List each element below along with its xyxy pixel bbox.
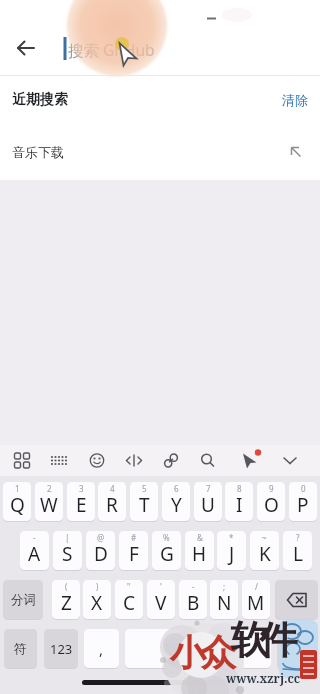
button[interactable]: 7 [194, 482, 222, 521]
staticText: I [236, 492, 243, 518]
button[interactable]: 1 [3, 482, 31, 521]
button[interactable]: 空格 [125, 629, 230, 668]
button[interactable]: 5 [130, 482, 158, 521]
staticText: | [65, 532, 70, 543]
button[interactable] [275, 580, 318, 619]
button[interactable]: 3 [67, 482, 95, 521]
button[interactable]: | [53, 531, 82, 570]
staticText: 6 [174, 483, 179, 494]
staticText: S [62, 541, 73, 567]
button[interactable] [120, 445, 160, 476]
staticText: 5 [142, 483, 147, 494]
button[interactable]: ? [283, 531, 312, 570]
staticText: L [293, 541, 303, 567]
button[interactable] [280, 445, 320, 476]
staticText: 123 [50, 640, 73, 658]
staticText: 符 [14, 641, 27, 657]
staticText: O [264, 492, 279, 518]
button[interactable] [10, 32, 42, 64]
button[interactable]: @ [86, 531, 115, 570]
staticText: % [163, 532, 170, 543]
button[interactable]: ' [147, 580, 175, 619]
staticText: E [76, 492, 87, 518]
staticText: # [131, 532, 137, 543]
button[interactable]: # [119, 531, 148, 570]
staticText: ~ [262, 532, 267, 543]
button[interactable] [160, 445, 200, 476]
button[interactable] [240, 445, 280, 476]
staticText: , [99, 639, 104, 659]
button[interactable] [80, 445, 120, 476]
staticText: 2 [47, 483, 52, 494]
staticText: 空格 [165, 641, 190, 657]
staticText: Q [10, 492, 25, 518]
staticText: Y [171, 492, 182, 518]
button[interactable]: , [84, 629, 119, 668]
button[interactable]: 。 [236, 629, 271, 668]
button[interactable]: ( [52, 580, 80, 619]
staticText: 小众 [172, 630, 234, 675]
staticText: www.xzrj.cc [226, 670, 301, 686]
button[interactable]: 8 [225, 482, 253, 521]
staticText: 分词 [11, 592, 36, 608]
staticText: 9 [269, 483, 274, 494]
staticText: 。 [247, 641, 260, 657]
staticText: C [123, 590, 136, 616]
staticText: 1 [15, 483, 20, 494]
staticText: 3 [79, 483, 84, 494]
staticText: / [255, 581, 258, 592]
staticText: W [40, 492, 58, 518]
staticText: * [229, 532, 234, 543]
staticText: 搜索 GitHub [68, 39, 155, 60]
staticText: - [33, 532, 36, 543]
staticText: 近期搜索 [12, 91, 68, 109]
button[interactable]: " [115, 580, 143, 619]
button[interactable]: / [242, 580, 270, 619]
staticText: A [28, 541, 41, 567]
button[interactable]: 9 [257, 482, 285, 521]
staticText: K [259, 541, 271, 567]
staticText: P [297, 492, 309, 518]
button[interactable]: 123 [44, 629, 78, 668]
button[interactable]: 清除 [282, 92, 308, 108]
button[interactable]: & [185, 531, 214, 570]
button[interactable]: 符 [4, 629, 37, 668]
staticText: ? [296, 532, 300, 543]
button[interactable]: * [217, 531, 246, 570]
button[interactable]: - [20, 531, 49, 570]
button[interactable]: ; [210, 580, 238, 619]
staticText: B [187, 590, 200, 616]
staticText: N [217, 590, 232, 616]
staticText: M [247, 590, 265, 616]
staticText: T [139, 492, 150, 518]
staticText: 清除 [282, 92, 308, 108]
button[interactable]: ~ [250, 531, 279, 570]
button[interactable] [200, 445, 240, 476]
button[interactable]: 分词 [3, 580, 43, 619]
button[interactable]: - [179, 580, 207, 619]
staticText: 4 [110, 483, 115, 494]
staticText: H [192, 541, 207, 567]
button[interactable]: % [152, 531, 181, 570]
button[interactable]: ) [83, 580, 111, 619]
button[interactable] [277, 629, 316, 668]
button[interactable]: 4 [98, 482, 126, 521]
button[interactable] [0, 445, 40, 476]
button[interactable]: 音乐下载 [0, 127, 320, 177]
staticText: V [155, 590, 167, 616]
button[interactable]: 6 [162, 482, 190, 521]
staticText: ) [96, 581, 99, 592]
button[interactable]: 2 [35, 482, 63, 521]
staticText: J [229, 541, 235, 567]
staticText: 音乐下载 [12, 144, 64, 160]
staticText: D [94, 541, 108, 567]
staticText: G [160, 541, 174, 567]
staticText: Z [61, 590, 72, 616]
staticText: X [91, 590, 103, 616]
staticText: R [106, 492, 118, 518]
button[interactable]: 0 [289, 482, 317, 521]
staticText: & [197, 532, 203, 543]
staticText: 软件 [235, 616, 293, 664]
staticText: 8 [237, 483, 242, 494]
button[interactable] [40, 445, 80, 476]
